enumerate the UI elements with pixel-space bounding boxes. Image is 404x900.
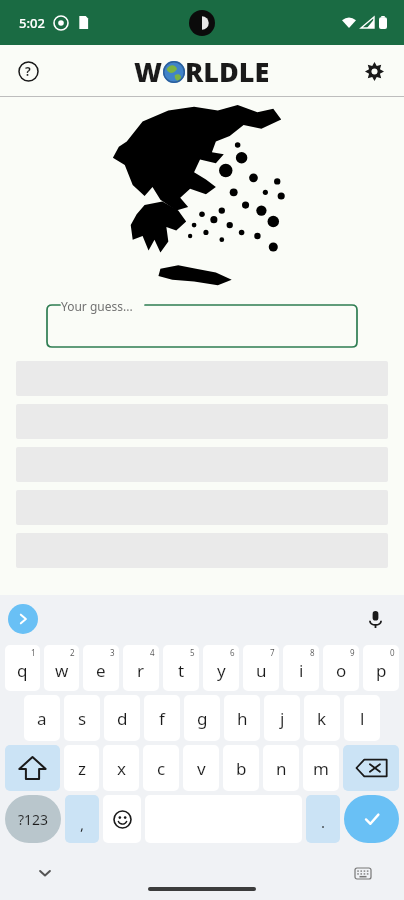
button[interactable]: z — [64, 745, 99, 791]
button[interactable]: Emoji — [103, 795, 141, 843]
button[interactable]: 8 — [283, 645, 319, 691]
staticText: RLDLE — [185, 53, 270, 90]
button[interactable]: 2 — [44, 645, 79, 691]
button[interactable]: j — [264, 695, 300, 741]
staticText: c — [157, 757, 166, 780]
staticText: . — [321, 812, 326, 832]
button[interactable]: a — [24, 695, 60, 741]
button[interactable]: v — [183, 745, 219, 791]
staticText: Your guess... — [61, 298, 133, 314]
staticText: u — [256, 659, 267, 682]
staticText: a — [37, 707, 47, 730]
button[interactable]: Help — [8, 51, 48, 91]
staticText: 2 — [70, 647, 75, 658]
staticText: b — [236, 757, 247, 780]
button[interactable]: Settings — [354, 51, 394, 91]
staticText: h — [237, 707, 248, 730]
staticText: e — [96, 659, 106, 682]
staticText: 8 — [310, 647, 315, 658]
staticText: i — [299, 659, 304, 682]
staticText: 6 — [230, 647, 235, 658]
button[interactable]: Enter — [344, 795, 399, 843]
button[interactable]: 1 — [5, 645, 40, 691]
staticText: 0 — [390, 647, 395, 658]
button[interactable]: x — [103, 745, 139, 791]
button[interactable]: c — [143, 745, 179, 791]
staticText: j — [280, 707, 285, 730]
staticText: 5 — [190, 647, 195, 658]
button[interactable]: f — [144, 695, 180, 741]
staticText: ? — [25, 63, 31, 79]
staticText: 4 — [150, 647, 155, 658]
button[interactable]: g — [184, 695, 220, 741]
staticText: p — [376, 659, 387, 682]
staticText: n — [276, 757, 287, 780]
button[interactable]: 0 — [363, 645, 399, 691]
staticText: l — [360, 707, 365, 730]
staticText: 5:02 — [19, 14, 45, 32]
button[interactable]: 4 — [123, 645, 159, 691]
staticText: o — [336, 659, 347, 682]
button[interactable]: h — [224, 695, 260, 741]
staticText: v — [197, 757, 206, 780]
button[interactable]: m — [303, 745, 339, 791]
staticText: 9 — [350, 647, 355, 658]
button[interactable]: Backspace — [343, 745, 399, 791]
staticText: 1 — [31, 647, 36, 658]
staticText: s — [78, 707, 87, 730]
staticText: d — [117, 707, 128, 730]
staticText: k — [317, 707, 327, 730]
button[interactable]: Switch keyboard — [348, 858, 378, 888]
staticText: y — [217, 659, 226, 682]
button[interactable]: s — [64, 695, 100, 741]
button[interactable]: ?123 — [5, 795, 61, 843]
staticText: 3 — [110, 647, 115, 658]
button[interactable]: l — [344, 695, 380, 741]
button[interactable]: Hide keyboard — [30, 858, 60, 888]
staticText: 7 — [270, 647, 275, 658]
staticText: r — [137, 659, 145, 682]
staticText: q — [17, 659, 28, 682]
staticText: f — [159, 707, 165, 730]
button[interactable]: More suggestions — [8, 604, 38, 634]
staticText: w — [55, 659, 69, 682]
button[interactable]: 6 — [203, 645, 239, 691]
staticText: z — [78, 757, 86, 780]
button[interactable]: b — [223, 745, 259, 791]
staticText: t — [178, 659, 185, 682]
button[interactable]: d — [104, 695, 140, 741]
button[interactable]: 7 — [243, 645, 279, 691]
button[interactable]: , — [65, 795, 99, 843]
button[interactable]: Shift — [5, 745, 60, 791]
button[interactable]: . — [306, 795, 340, 843]
staticText: ?123 — [18, 810, 49, 829]
staticText: g — [197, 707, 208, 730]
staticText: , — [80, 814, 85, 834]
button[interactable]: 9 — [323, 645, 359, 691]
button[interactable]: 3 — [83, 645, 119, 691]
button[interactable]: n — [263, 745, 299, 791]
button[interactable]: k — [304, 695, 340, 741]
button[interactable]: 5 — [163, 645, 199, 691]
staticText: W — [134, 53, 163, 90]
staticText: x — [117, 757, 126, 780]
staticText: m — [313, 757, 329, 780]
button[interactable]: Voice input — [360, 604, 390, 634]
